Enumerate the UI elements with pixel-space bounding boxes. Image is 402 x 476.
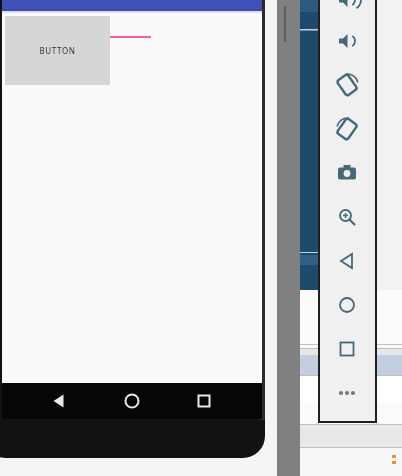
button[interactable]: Back [43, 385, 75, 417]
button[interactable]: Take screenshot [328, 154, 366, 192]
button[interactable]: Volume up [328, 0, 366, 19]
button[interactable]: More [328, 374, 366, 412]
button[interactable]: Rotate right [328, 110, 366, 148]
button[interactable]: Zoom [328, 198, 366, 236]
button[interactable]: BUTTON [5, 16, 110, 85]
button[interactable]: Overview [328, 330, 366, 368]
button[interactable]: Back [328, 242, 366, 280]
button[interactable]: Home [328, 286, 366, 324]
button[interactable]: Recent apps [188, 385, 220, 417]
button[interactable]: Volume down [328, 22, 366, 60]
button[interactable]: Home [116, 385, 148, 417]
button[interactable]: Rotate left [328, 66, 366, 104]
staticText: BUTTON [39, 45, 76, 56]
